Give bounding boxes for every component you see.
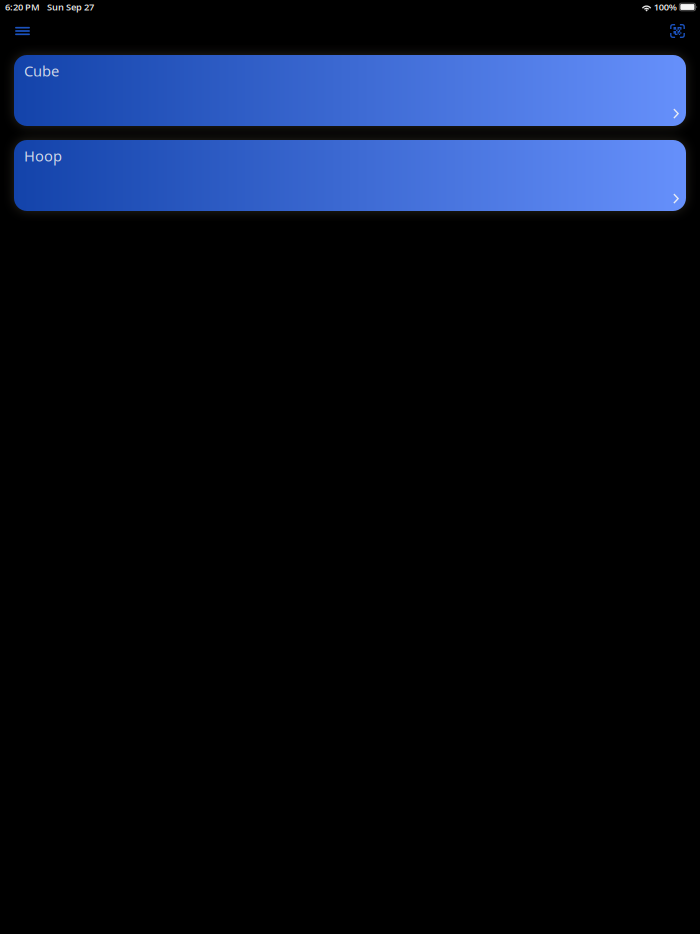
staticText: Hoop xyxy=(24,146,62,165)
staticText: Cube xyxy=(24,61,59,80)
button[interactable]: Hoop xyxy=(14,140,686,211)
button[interactable]: Scan QR code xyxy=(662,14,693,41)
staticText: 6:20 PM xyxy=(5,1,40,13)
button[interactable]: Menu xyxy=(7,14,38,41)
button[interactable]: Cube xyxy=(14,55,686,126)
staticText: 100% xyxy=(654,1,677,13)
staticText: Sun Sep 27 xyxy=(47,1,94,13)
